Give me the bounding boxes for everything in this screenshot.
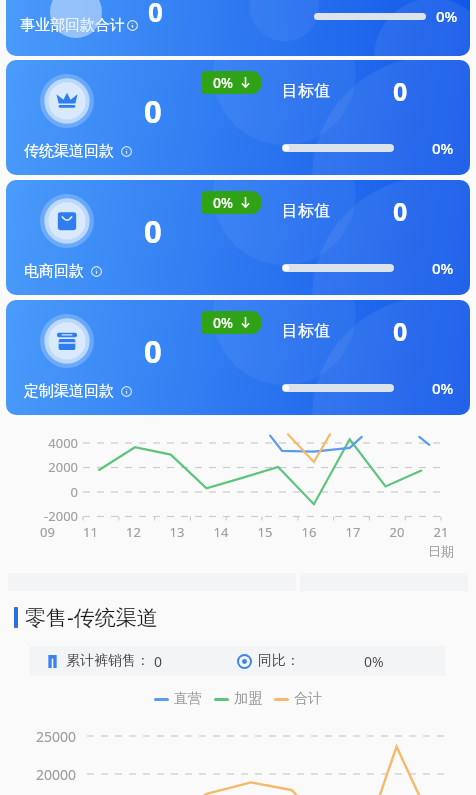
staticText: 0 [18,483,78,501]
button[interactable]: Custom channel [6,300,470,415]
staticText: 目标值 [282,321,330,341]
staticText: 零售-传统渠道 [25,603,158,632]
button[interactable]: 事业部回款合计 [6,0,470,56]
staticText: 0% [213,193,233,212]
staticText: 0 [148,0,163,29]
staticText: 日期 [428,543,454,559]
button[interactable]: Traditional channel [6,60,470,175]
staticText: 11 [69,523,112,541]
staticText: 16 [287,523,331,541]
other: Traditional channel [40,74,94,128]
button[interactable]: E-commerce [6,180,470,295]
staticText: 0% [213,313,233,332]
staticText: 20000 [14,765,76,784]
staticText: -2000 [18,507,78,525]
button[interactable]: 加盟 [214,690,262,708]
staticText: 21 [419,523,463,541]
staticText: 0% [364,652,384,671]
staticText: 15 [243,523,287,541]
staticText: 0% [432,258,454,278]
staticText: 09 [26,523,69,541]
staticText: 0 [144,210,162,252]
staticText: 直营 [174,690,202,708]
button[interactable]: 累计裤销售： [30,646,446,676]
button[interactable]: 直营 [154,690,202,708]
staticText: 0% [432,378,454,398]
staticText: 0 [144,330,162,372]
staticText: 13 [155,523,199,541]
staticText: 0% [436,6,458,26]
staticText: 2000 [18,458,78,476]
staticText: 0% [213,73,233,92]
staticText: 定制渠道回款 [24,382,114,401]
other: E-commerce [40,194,94,248]
staticText: 合计 [294,690,322,708]
staticText: 0 [144,90,162,132]
staticText: 0 [393,74,408,108]
staticText: 加盟 [234,690,262,708]
staticText: 传统渠道回款 [24,142,114,161]
other: Custom channel [40,314,94,368]
staticText: 12 [112,523,155,541]
staticText: 4000 [18,434,78,452]
staticText: 0 [393,314,408,348]
button[interactable]: 合计 [274,690,322,708]
staticText: 17 [331,523,375,541]
staticText: 电商回款 [24,262,84,281]
staticText: 25000 [14,727,76,746]
staticText: 同比： [258,652,300,670]
staticText: 0% [432,138,454,158]
staticText: 20 [375,523,419,541]
staticText: 0 [393,194,408,228]
staticText: 目标值 [282,81,330,101]
staticText: 事业部回款合计 [20,16,125,35]
staticText: 14 [199,523,243,541]
staticText: 目标值 [282,201,330,221]
staticText: 0 [154,652,163,671]
staticText: 累计裤销售： [66,652,150,670]
